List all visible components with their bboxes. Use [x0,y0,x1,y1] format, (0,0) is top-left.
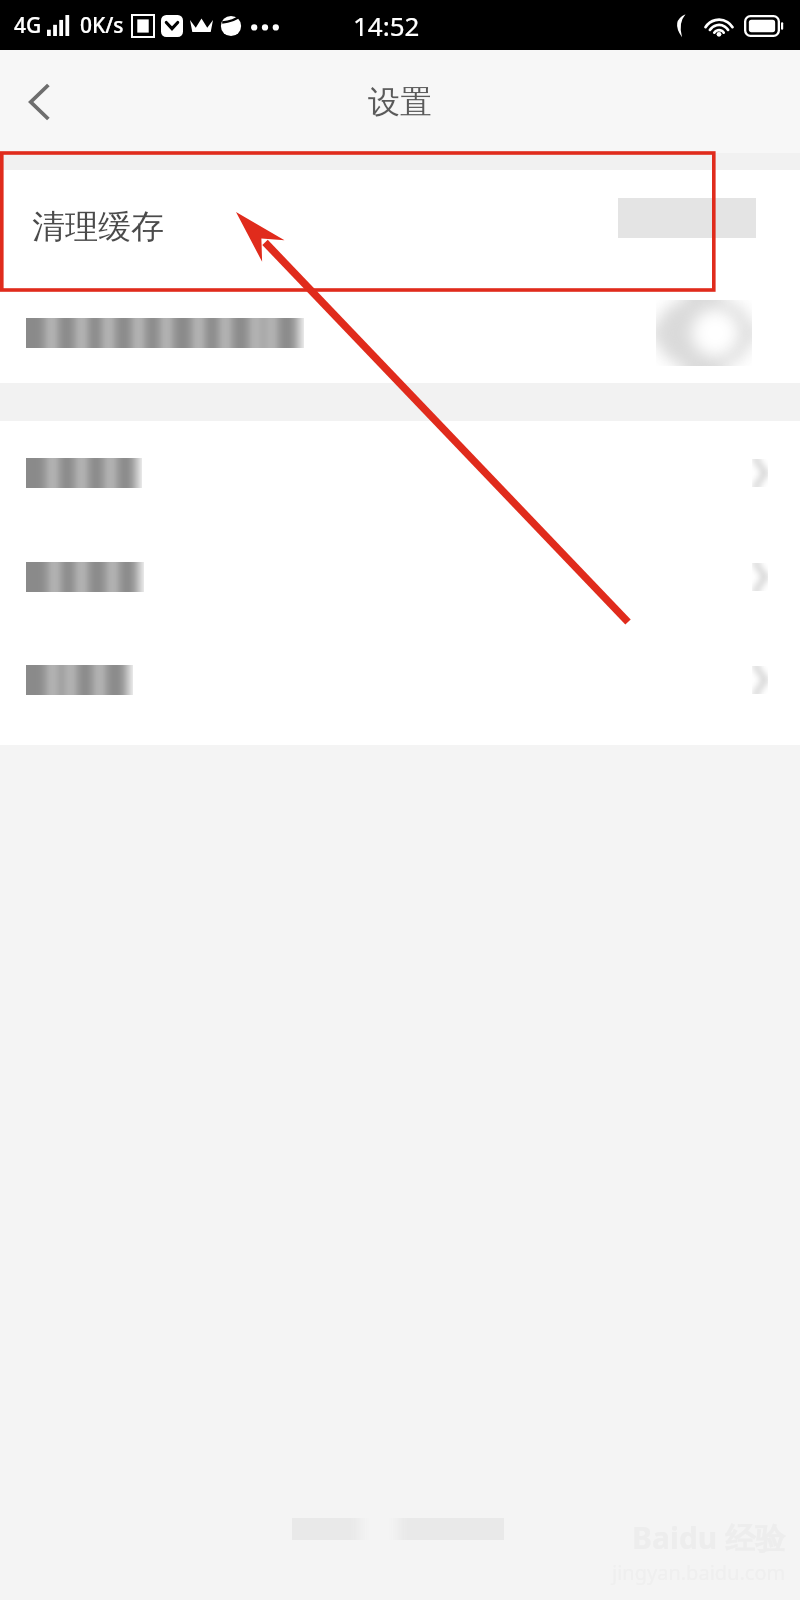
staticText: 4G [14,11,42,40]
button[interactable] [0,283,800,383]
button[interactable] [0,421,800,525]
staticText: Baidu 经验 [632,1517,786,1558]
staticText: 0K/s [80,11,124,40]
button[interactable] [0,629,800,731]
button[interactable]: Back [0,58,80,146]
button[interactable]: 清理缓存 [0,170,800,283]
button[interactable] [0,525,800,629]
staticText: 14:52 [353,8,420,43]
staticText: 清理缓存 [32,206,164,248]
staticText: 设置 [368,82,432,122]
